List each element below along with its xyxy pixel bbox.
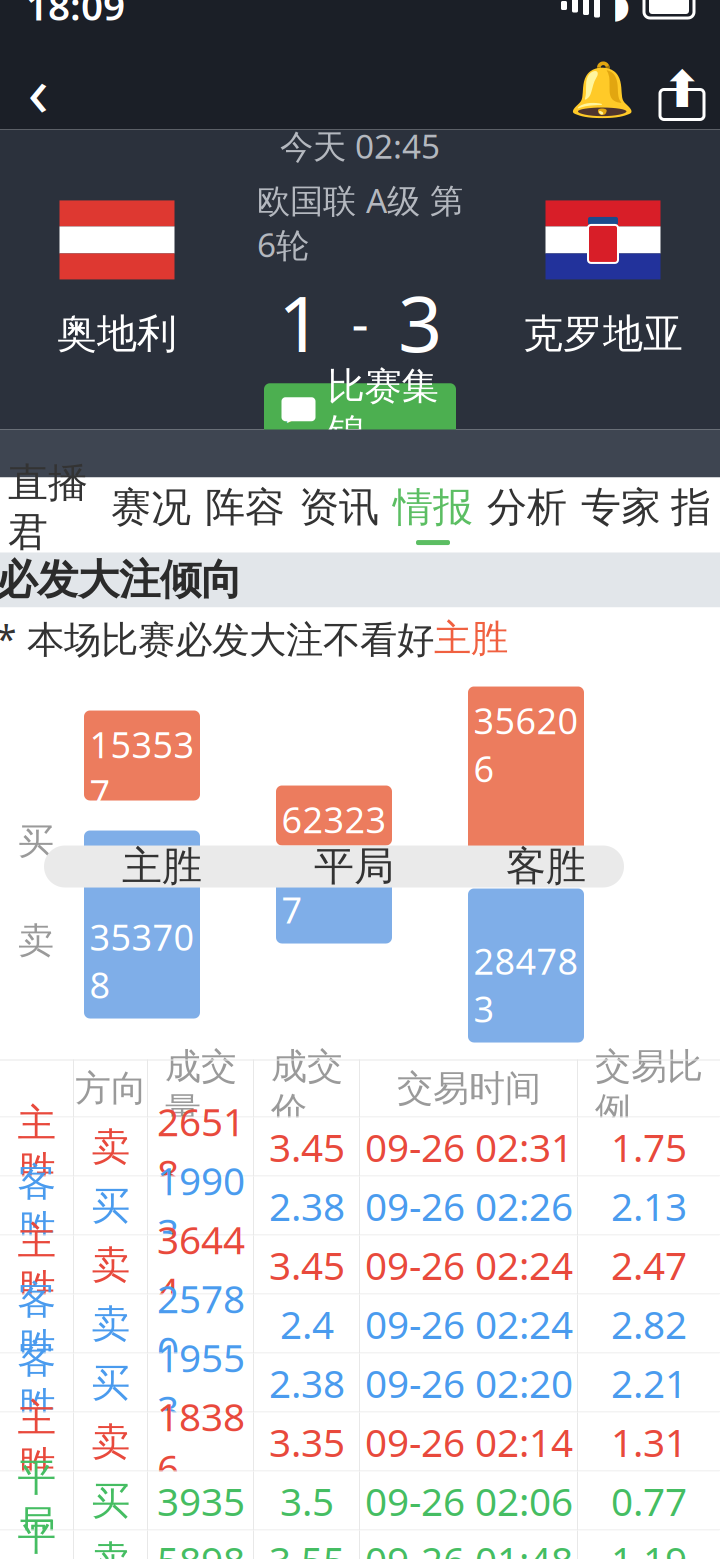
button[interactable]: 指	[668, 477, 714, 552]
button[interactable]: 直播君	[0, 477, 104, 552]
staticText: 赛况	[111, 483, 191, 532]
staticText: 09-26 02:06	[365, 1475, 573, 1527]
staticText: ◗	[612, 0, 630, 25]
staticText: 3.35	[269, 1416, 345, 1468]
staticText: 奥地利	[57, 309, 177, 358]
staticText: 主胜	[434, 616, 508, 661]
button[interactable]: 资讯	[292, 477, 386, 552]
button[interactable]: 提醒	[562, 49, 642, 129]
staticText: 2.13	[611, 1180, 687, 1232]
staticText: 62323	[281, 795, 386, 843]
staticText: 主胜	[17, 1099, 56, 1194]
staticText: 客胜	[17, 1158, 56, 1253]
staticText: 成交量	[165, 1044, 237, 1133]
staticText: 3.5	[280, 1475, 334, 1527]
staticText: 09-26 02:24	[365, 1239, 573, 1291]
staticText: 克罗地亚	[523, 309, 683, 358]
staticText: 18386	[157, 1391, 245, 1493]
staticText: 356206	[473, 696, 578, 792]
staticText: 2.38	[269, 1180, 345, 1232]
staticText: 客胜	[17, 1335, 56, 1430]
staticText: 1	[278, 270, 322, 373]
staticText: 2.21	[611, 1357, 687, 1409]
staticText: 1.19	[611, 1534, 687, 1559]
button[interactable]: ▶	[264, 383, 456, 435]
staticText: 阵容	[205, 483, 285, 532]
staticText: 09-26 02:24	[365, 1298, 573, 1350]
staticText: 客胜	[506, 842, 586, 891]
staticText: 2.82	[611, 1298, 687, 1350]
staticText: 09-26 02:26	[365, 1180, 573, 1232]
staticText: 比赛集锦	[327, 363, 438, 455]
staticText: 19553	[157, 1332, 245, 1434]
staticText: 交易时间	[397, 1066, 541, 1111]
staticText: 欧国联 A级 第6轮	[257, 178, 463, 266]
staticText: 主胜	[17, 1394, 56, 1489]
staticText: 36444	[157, 1214, 245, 1316]
staticText: 1.31	[611, 1416, 687, 1468]
staticText: 主胜	[17, 1217, 56, 1312]
staticText: 116477	[281, 838, 386, 933]
staticText: 平局	[17, 1453, 56, 1548]
staticText: 买	[91, 1182, 130, 1230]
staticText: 2.4	[280, 1298, 334, 1350]
staticText: 主胜	[122, 842, 202, 891]
staticText: 资讯	[299, 483, 379, 532]
staticText: 3.45	[269, 1121, 345, 1173]
staticText: 分析	[487, 483, 567, 532]
staticText: 3.45	[269, 1239, 345, 1291]
staticText: 卖	[91, 1241, 130, 1289]
staticText: 卖	[91, 1418, 130, 1466]
staticText: ▶	[287, 393, 310, 426]
staticText: 买	[18, 819, 54, 864]
button[interactable]: 情报	[386, 477, 480, 552]
staticText: 卖	[91, 1300, 130, 1348]
staticText: 2.38	[269, 1357, 345, 1409]
button[interactable]: 返回	[0, 49, 78, 129]
staticText: 5898	[157, 1534, 245, 1559]
button[interactable]: 阵容	[198, 477, 292, 552]
staticText: 3.55	[269, 1534, 345, 1559]
staticText: * 本场比赛必发大注不看好	[0, 614, 434, 663]
staticText: 2.47	[611, 1239, 687, 1291]
staticText: 0.77	[611, 1475, 687, 1527]
staticText: 平局	[17, 1512, 56, 1559]
staticText: 09-26 01:48	[365, 1534, 573, 1559]
staticText: 今天 02:45	[280, 124, 440, 168]
staticText: 3935	[157, 1475, 245, 1527]
staticText: 必发大注倾向	[0, 555, 242, 605]
staticText: 09-26 02:31	[365, 1121, 573, 1173]
staticText: 3	[398, 270, 442, 373]
staticText: -	[351, 286, 368, 357]
button[interactable]: 分析	[480, 477, 574, 552]
staticText: 卖	[91, 1536, 130, 1559]
staticText: 平局	[314, 842, 394, 891]
staticText: 353708	[89, 913, 194, 1008]
staticText: 284783	[473, 937, 578, 1032]
staticText: 方向	[75, 1066, 147, 1111]
staticText: 19903	[157, 1155, 245, 1257]
staticText: 指	[671, 483, 711, 532]
staticText: 卖	[18, 919, 54, 963]
staticText: 卖	[91, 1123, 130, 1171]
staticText: 26518	[157, 1096, 245, 1198]
staticText: 1.75	[611, 1121, 687, 1173]
staticText: 🔔	[569, 59, 635, 120]
staticText: 客胜	[17, 1276, 56, 1371]
staticText: 成交价	[271, 1044, 343, 1133]
button[interactable]: 分享	[642, 49, 720, 129]
staticText: ⬆	[661, 61, 703, 118]
staticText: 25780	[157, 1273, 245, 1375]
staticText: 买	[91, 1477, 130, 1525]
staticText: ‹	[27, 43, 48, 136]
button[interactable]: 专家	[574, 477, 668, 552]
staticText: 153537	[89, 720, 194, 816]
button[interactable]: 赛况	[104, 477, 198, 552]
staticText: 18:09	[26, 0, 125, 31]
staticText: 买	[91, 1359, 130, 1407]
staticText: 09-26 02:14	[365, 1416, 573, 1468]
staticText: 09-26 02:20	[365, 1357, 573, 1409]
staticText: 专家	[581, 483, 661, 532]
staticText: 情报	[393, 483, 473, 532]
staticText: 直播君	[8, 458, 88, 557]
